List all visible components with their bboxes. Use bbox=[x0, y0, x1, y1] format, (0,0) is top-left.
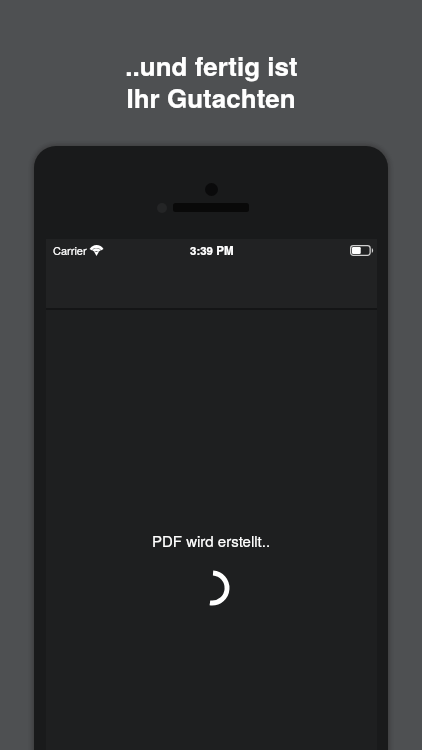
other: Loading bbox=[192, 568, 232, 608]
other: Battery 50 percent bbox=[350, 245, 373, 256]
staticText: Carrier bbox=[53, 242, 87, 258]
staticText: ..und fertig ist bbox=[125, 47, 298, 84]
staticText: 3:39 PM bbox=[190, 242, 234, 258]
other: Wi-Fi signal bbox=[89, 245, 104, 255]
staticText: PDF wird erstellt.. bbox=[152, 530, 271, 551]
staticText: Ihr Gutachten bbox=[126, 79, 296, 116]
